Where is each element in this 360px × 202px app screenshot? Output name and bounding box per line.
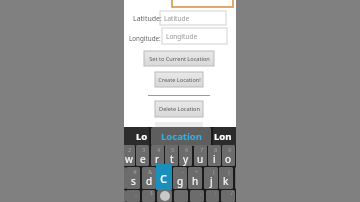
staticText: -	[182, 168, 184, 176]
button[interactable]: Key c	[156, 164, 172, 190]
button[interactable]: :	[206, 190, 219, 202]
button[interactable]	[157, 190, 172, 202]
staticText: 7	[200, 146, 204, 154]
staticText: :	[215, 190, 217, 197]
button[interactable]: &	[142, 167, 156, 189]
button[interactable]: -	[173, 167, 187, 189]
staticText: i	[213, 152, 216, 166]
button[interactable]: Longitude	[162, 28, 227, 44]
button[interactable]	[235, 167, 236, 189]
staticText: *	[164, 168, 168, 176]
button[interactable]: Set to Current Location	[144, 51, 214, 66]
staticText: (	[213, 168, 215, 176]
button[interactable]: _	[126, 190, 140, 202]
button[interactable]: 3	[136, 145, 149, 166]
staticText: g	[177, 174, 184, 188]
staticText: +	[195, 168, 199, 176]
staticText: Lon	[214, 130, 232, 143]
button[interactable]: Lo	[124, 127, 149, 146]
staticText: c	[160, 167, 167, 187]
staticText: o	[225, 152, 232, 166]
staticText: /	[231, 190, 233, 197]
staticText: j	[210, 174, 213, 188]
staticText: Set to Current Location	[149, 55, 210, 63]
other: Touch indicator	[160, 191, 170, 201]
staticText: t	[170, 152, 174, 166]
staticText: )	[228, 168, 230, 176]
button[interactable]: ,	[190, 190, 204, 202]
button[interactable]: *	[157, 167, 171, 189]
button[interactable]: 5	[165, 145, 178, 166]
button[interactable]: Latitude	[160, 11, 226, 25]
staticText: 6	[185, 146, 189, 154]
button[interactable]: /	[221, 190, 235, 202]
button[interactable]: #	[126, 167, 140, 189]
staticText: y	[183, 152, 189, 166]
staticText: Latitude:	[133, 14, 162, 24]
button[interactable]: Location	[151, 127, 211, 146]
staticText: d	[146, 174, 153, 188]
staticText: 5	[171, 146, 175, 154]
button[interactable]: (	[204, 167, 218, 189]
staticText: 8	[214, 146, 218, 154]
button[interactable]: )	[219, 167, 233, 189]
button[interactable]: Lon	[213, 127, 236, 146]
staticText: Delete Location	[159, 105, 200, 113]
staticText: Create Location!	[158, 76, 201, 84]
staticText: _	[135, 190, 138, 197]
staticText: Lo	[136, 130, 148, 143]
staticText: f	[162, 174, 166, 188]
button[interactable]: +	[188, 167, 202, 189]
staticText: w	[125, 152, 133, 166]
button[interactable]: $	[142, 190, 155, 202]
button[interactable]: 2	[124, 145, 135, 166]
staticText: $	[150, 190, 153, 197]
button[interactable]: 8	[208, 145, 221, 166]
staticText: ,	[200, 190, 202, 197]
staticText: 2	[128, 146, 132, 154]
button[interactable]: Location name field	[172, 0, 233, 7]
staticText: r	[155, 152, 160, 166]
button[interactable]: 9	[222, 145, 235, 166]
staticText: Latitude	[164, 14, 190, 23]
staticText: Location	[161, 130, 202, 143]
button[interactable]	[124, 167, 126, 189]
button[interactable]: Delete Location	[155, 101, 203, 117]
button[interactable]: 4	[151, 145, 164, 166]
button[interactable]	[174, 190, 188, 202]
staticText: &	[148, 168, 153, 176]
staticText: 4	[157, 146, 161, 154]
button[interactable]: Create Location!	[155, 72, 203, 87]
staticText: 9	[228, 146, 232, 154]
staticText: #	[133, 168, 137, 176]
staticText: e	[140, 152, 146, 166]
staticText: k	[223, 174, 229, 188]
staticText: h	[192, 174, 199, 188]
button[interactable]	[124, 190, 126, 202]
staticText: Longitude:	[129, 34, 161, 43]
staticText: 3	[142, 146, 146, 154]
staticText: s	[131, 174, 136, 188]
staticText: u	[197, 152, 204, 166]
button[interactable]: 6	[179, 145, 192, 166]
staticText: Longitude	[166, 32, 198, 41]
button[interactable]: 7	[194, 145, 207, 166]
